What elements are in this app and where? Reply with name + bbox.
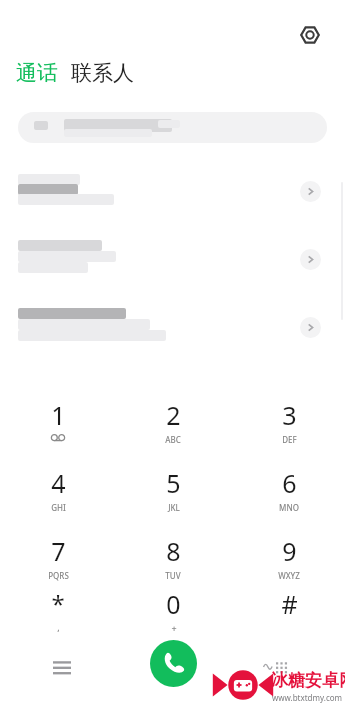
button[interactable]: 6 [255, 466, 323, 518]
button[interactable] [0, 166, 345, 222]
button[interactable]: 5 [139, 466, 207, 518]
staticText: WXYZ [278, 570, 300, 581]
staticText: 通话 [16, 60, 58, 86]
button[interactable]: 通话 [16, 60, 58, 86]
staticText: 2 [166, 398, 181, 432]
button[interactable]: 1 [24, 398, 92, 450]
button[interactable]: # [255, 587, 323, 639]
staticText: 0 [166, 587, 181, 621]
button[interactable]: * [24, 587, 92, 639]
staticText: JKL [168, 502, 180, 513]
staticText: * [51, 587, 65, 620]
staticText: 5 [166, 466, 181, 500]
staticText: 4 [51, 466, 66, 500]
staticText: 冰糖安卓网 [271, 670, 345, 691]
staticText: MNO [279, 502, 299, 513]
staticText: www.btxtdmy.com [272, 692, 343, 703]
button[interactable]: 8 [139, 534, 207, 586]
staticText: 3 [282, 398, 297, 432]
staticText: ABC [165, 434, 181, 445]
staticText: # [281, 587, 298, 621]
staticText: PQRS [48, 570, 69, 581]
button[interactable]: Call details [300, 181, 321, 202]
staticText: 9 [282, 534, 297, 568]
staticText: DEF [282, 434, 297, 445]
staticText: GHI [51, 502, 66, 513]
button[interactable] [0, 302, 345, 358]
button[interactable]: 0 [139, 587, 207, 639]
staticText: , [57, 621, 60, 633]
button[interactable]: Hide keypad [255, 647, 297, 689]
staticText: TUV [165, 570, 181, 581]
button[interactable]: 4 [24, 466, 92, 518]
staticText: 8 [166, 534, 181, 568]
button[interactable]: 联系人 [71, 60, 134, 86]
staticText: 7 [51, 534, 66, 568]
button[interactable]: 9 [255, 534, 323, 586]
button[interactable]: 7 [24, 534, 92, 586]
button[interactable]: Call log options [42, 647, 82, 687]
button[interactable] [0, 234, 345, 290]
button[interactable]: Call details [300, 249, 321, 270]
button[interactable] [18, 112, 327, 143]
button[interactable]: 3 [255, 398, 323, 450]
button[interactable]: 2 [139, 398, 207, 450]
staticText: 6 [282, 466, 297, 500]
staticText: + [171, 622, 177, 634]
button[interactable]: Call [150, 640, 197, 687]
button[interactable]: Call details [300, 317, 321, 338]
button[interactable]: Settings [292, 17, 328, 53]
staticText: 1 [51, 398, 66, 432]
staticText: 联系人 [71, 60, 134, 86]
